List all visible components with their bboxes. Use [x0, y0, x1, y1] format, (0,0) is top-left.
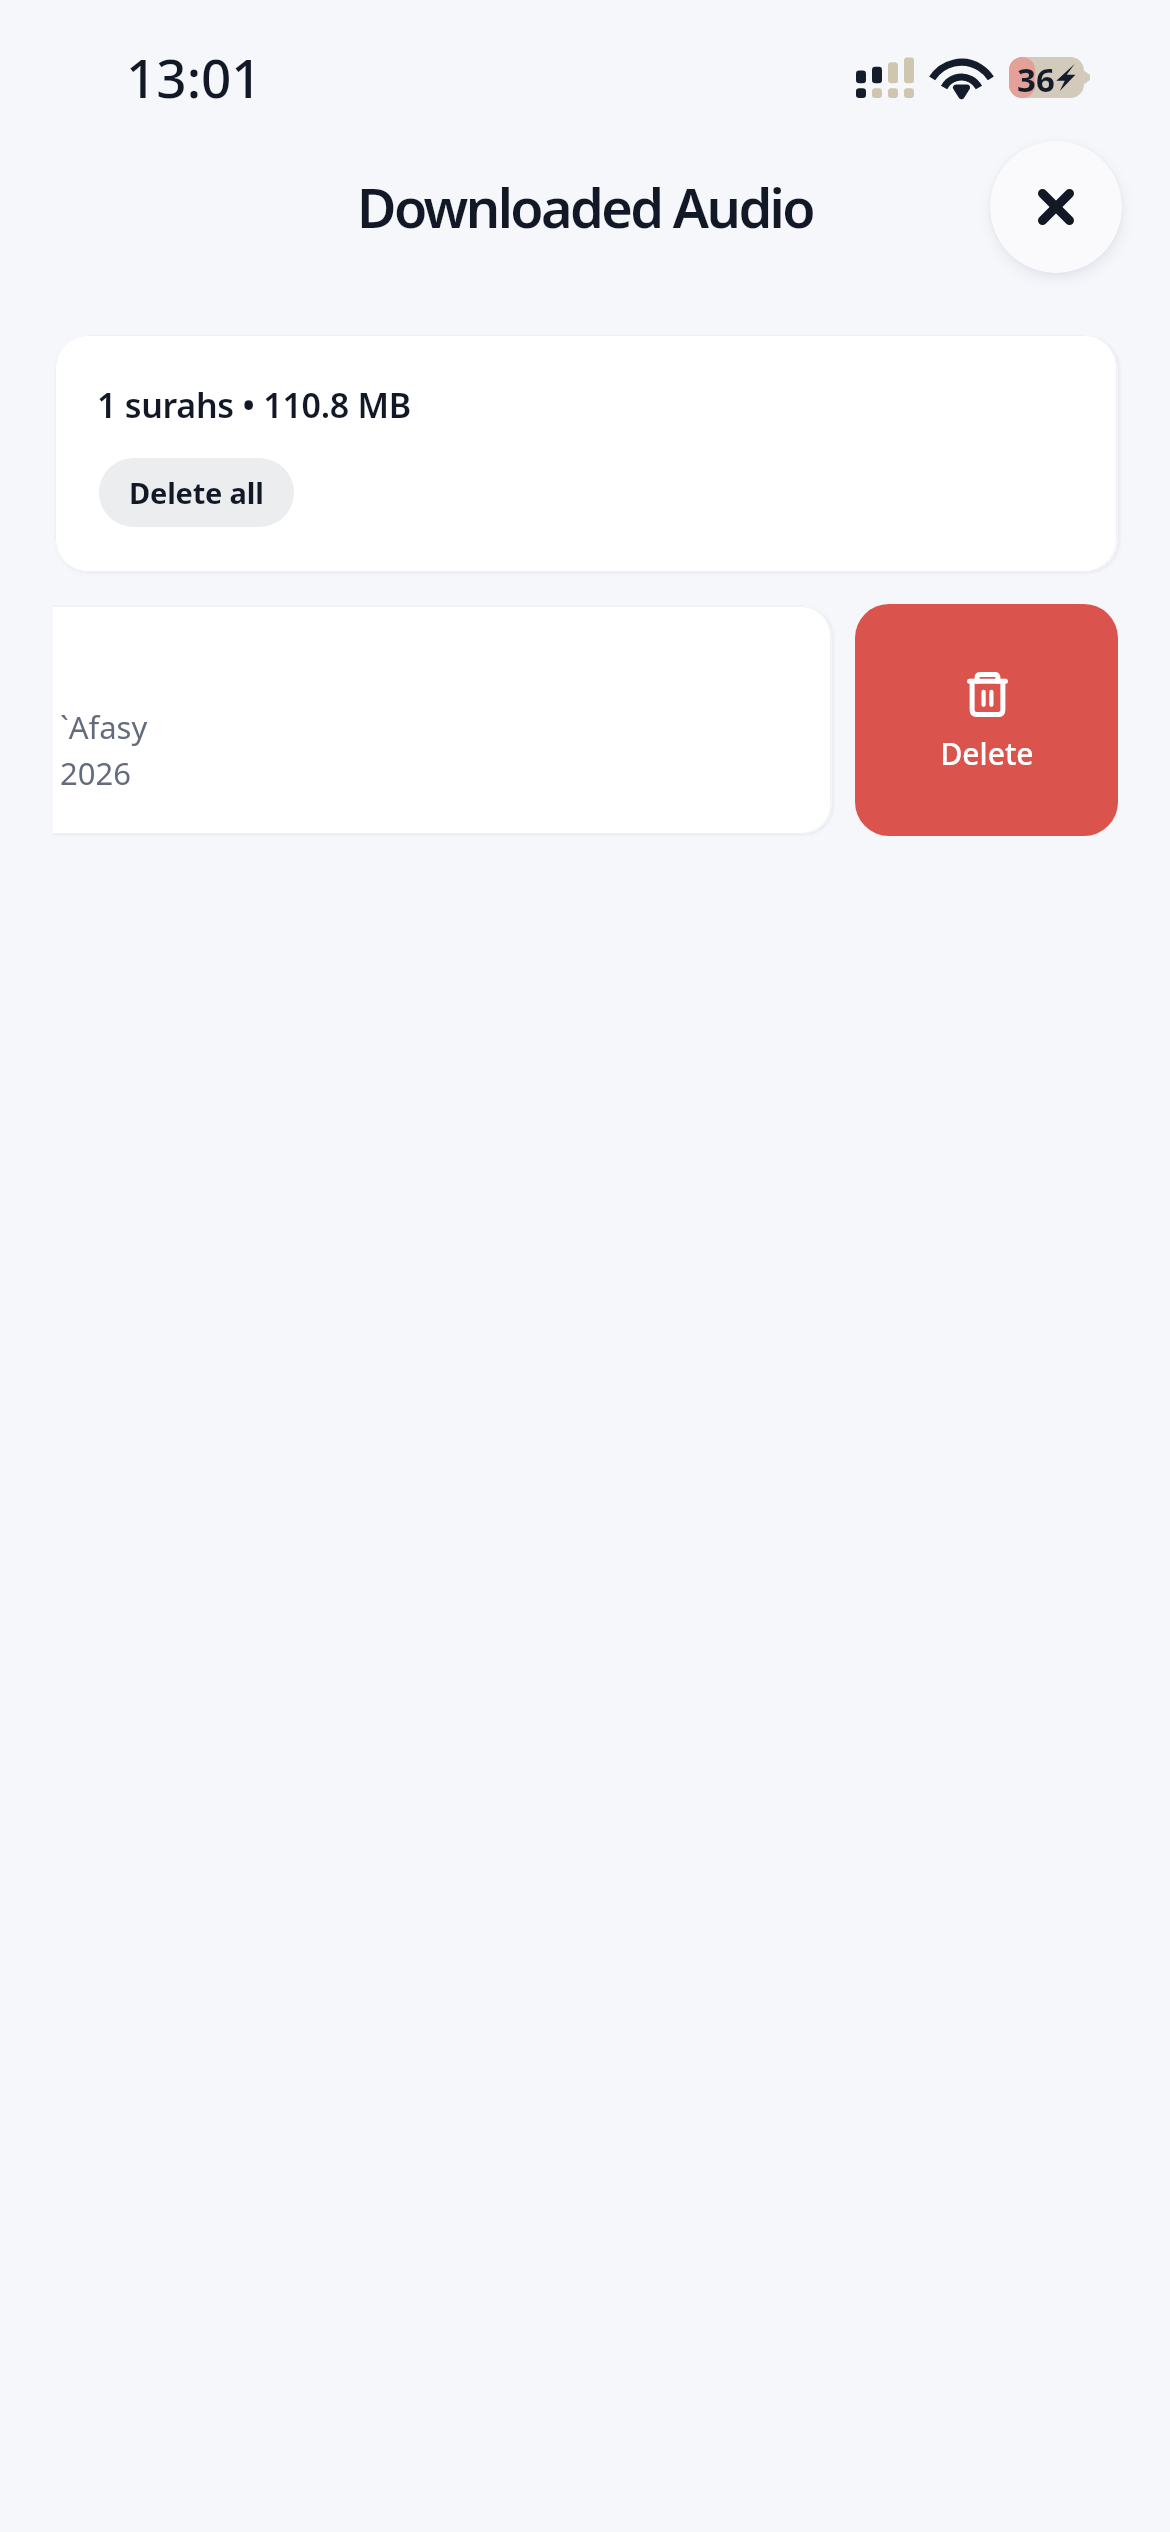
- staticText: 36: [1017, 57, 1055, 98]
- button[interactable]: Close: [990, 141, 1122, 273]
- staticText: 1 surahs • 110.8 MB: [97, 382, 411, 428]
- staticText: 2026: [60, 752, 131, 794]
- staticText: `Afasy: [60, 706, 148, 748]
- button[interactable]: Delete all: [99, 458, 294, 527]
- staticText: 13:01: [126, 41, 262, 113]
- staticText: Delete all: [129, 473, 264, 512]
- staticText: Downloaded Audio: [0, 170, 1170, 244]
- staticText: Delete: [940, 733, 1034, 774]
- button[interactable]: `Afasy: [53, 606, 831, 834]
- button[interactable]: Delete: [855, 604, 1118, 836]
